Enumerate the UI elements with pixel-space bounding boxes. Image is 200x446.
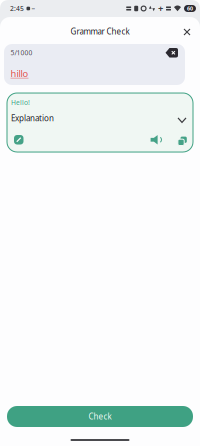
staticText: Check xyxy=(88,411,111,422)
staticText: Explanation xyxy=(11,113,54,123)
button[interactable]: Close xyxy=(180,23,194,37)
button[interactable]: Check xyxy=(7,406,193,427)
button[interactable]: Copy xyxy=(164,135,188,144)
staticText: 60 xyxy=(187,5,193,12)
button[interactable]: Speak xyxy=(150,134,164,145)
button[interactable]: 5/1000 xyxy=(4,44,185,85)
staticText: ... xyxy=(32,4,35,11)
staticText: Grammar Check xyxy=(70,26,129,37)
staticText: 5/1000 xyxy=(10,48,32,57)
staticText: + xyxy=(158,2,163,15)
button[interactable]: Apply correction xyxy=(11,135,23,144)
staticText: Hello! xyxy=(11,98,30,107)
staticText: 2:45 xyxy=(10,4,24,13)
button[interactable]: Expand explanation xyxy=(176,114,188,122)
staticText: hillo xyxy=(10,67,28,79)
button[interactable]: Clear text xyxy=(165,48,178,57)
